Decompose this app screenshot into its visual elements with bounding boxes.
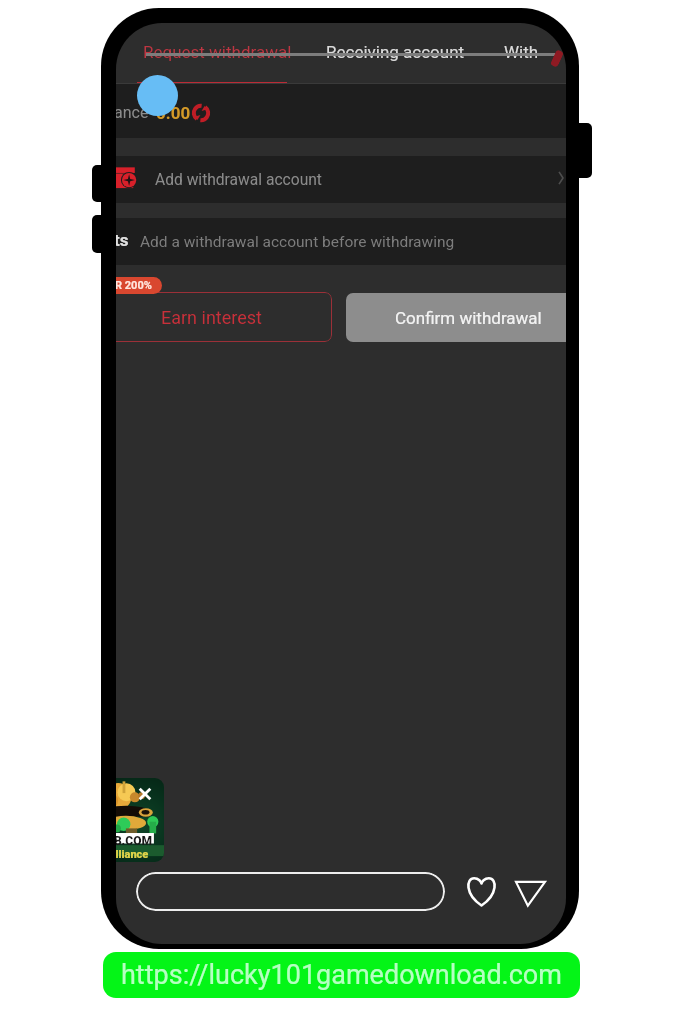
button[interactable]: CB.COM: [116, 778, 164, 862]
staticText: CB.COM: [116, 834, 152, 848]
staticText: ance: [116, 103, 149, 122]
button[interactable]: With: [504, 42, 539, 62]
staticText: https://lucky101gamedownload.com: [121, 959, 562, 991]
button[interactable]: Request withdrawal: [143, 42, 292, 62]
button[interactable]: [136, 872, 445, 911]
button[interactable]: Share: [514, 876, 547, 909]
button[interactable]: Close ad: [138, 787, 152, 801]
button[interactable]: [116, 218, 566, 265]
button[interactable]: Receiving account: [326, 42, 465, 62]
staticText: Add withdrawal account: [155, 171, 322, 189]
staticText: Request withdrawal: [143, 42, 292, 62]
button[interactable]: https://lucky101gamedownload.com: [103, 952, 580, 998]
button[interactable]: [116, 156, 566, 203]
staticText: 0.00: [156, 103, 191, 123]
staticText: Receiving account: [326, 42, 465, 62]
staticText: Add a withdrawal account before withdraw…: [140, 233, 455, 251]
staticText: Confirm withdrawal: [395, 308, 542, 328]
staticText: Earn interest: [161, 307, 262, 328]
staticText: With: [504, 42, 539, 62]
staticText: R 200%: [116, 279, 152, 292]
button[interactable]: Confirm withdrawal: [346, 293, 566, 342]
button[interactable]: Earn interest: [116, 292, 332, 342]
staticText: ts: [116, 230, 129, 250]
button[interactable]: Like: [464, 874, 499, 909]
staticText: Alliance: [116, 848, 149, 861]
